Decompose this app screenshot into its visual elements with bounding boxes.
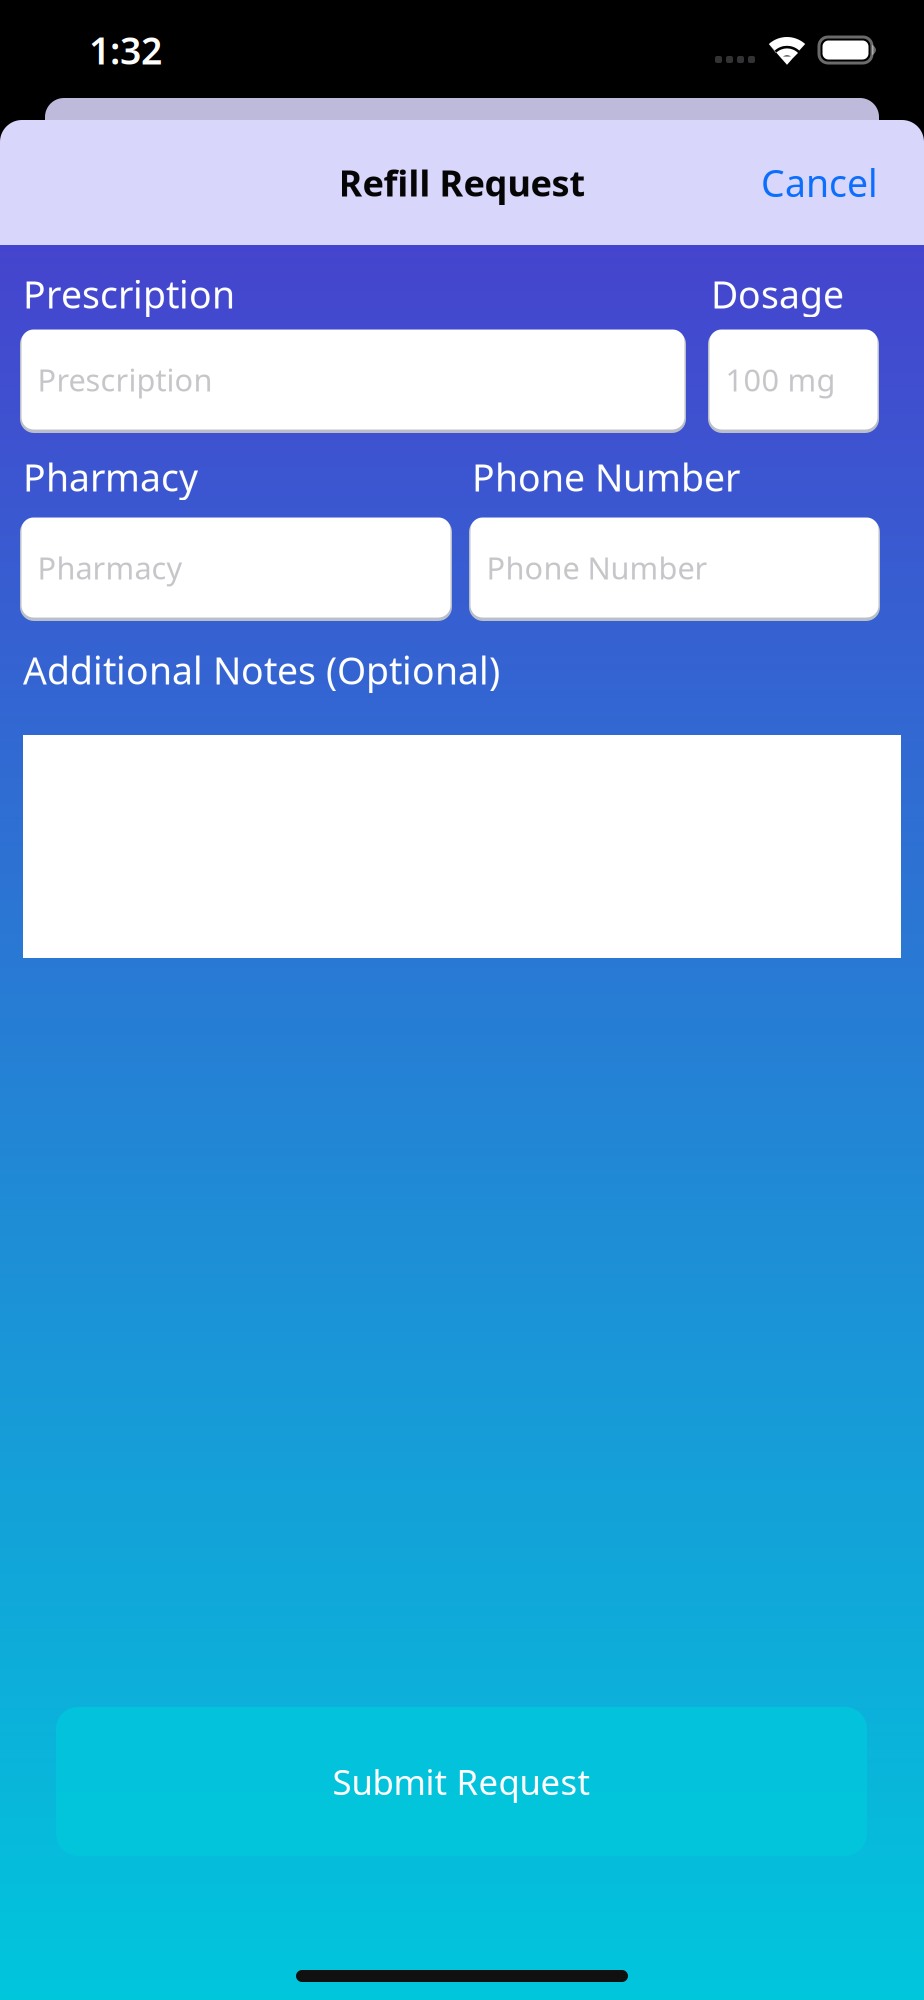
staticText: 100 mg: [725, 359, 835, 400]
staticText: Submit Request: [332, 1758, 590, 1804]
staticText: Phone Number: [486, 547, 707, 588]
staticText: Cancel: [761, 158, 878, 207]
button[interactable]: Submit Request: [56, 1707, 867, 1856]
staticText: Pharmacy: [23, 452, 198, 502]
staticText: Refill Request: [338, 159, 585, 206]
staticText: Phone Number: [472, 452, 740, 502]
staticText: Prescription: [37, 359, 212, 400]
staticText: Pharmacy: [37, 547, 182, 588]
button[interactable]: Cancel: [731, 140, 878, 225]
staticText: Additional Notes (Optional): [23, 645, 500, 695]
staticText: Prescription: [23, 269, 235, 319]
staticText: Dosage: [711, 269, 844, 319]
staticText: 1:32: [89, 25, 162, 75]
